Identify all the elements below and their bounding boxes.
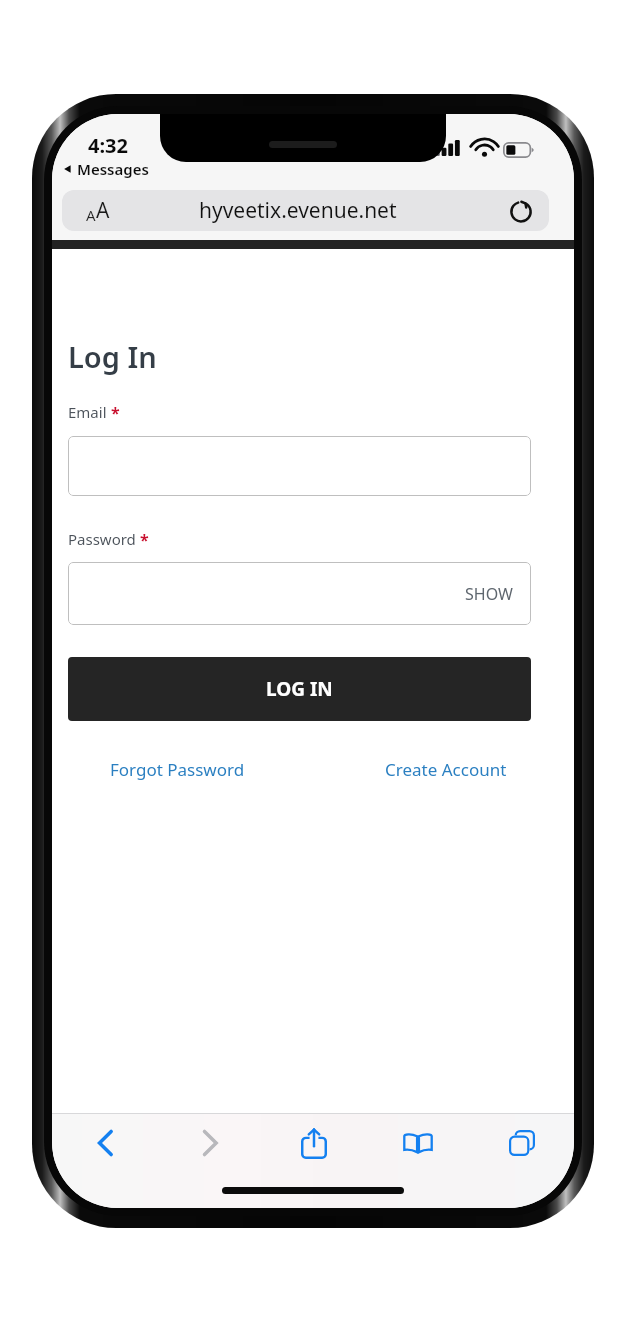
staticText: Forgot Password <box>110 758 245 781</box>
button[interactable]: A <box>62 190 549 231</box>
button[interactable]: Share <box>262 1114 366 1172</box>
staticText: hyveetix.evenue.net <box>199 196 397 225</box>
staticText: Email <box>68 402 111 422</box>
staticText: A <box>96 196 110 225</box>
staticText: LOG IN <box>266 676 333 702</box>
button[interactable]: Back <box>52 1114 157 1172</box>
staticText: Password <box>68 529 140 549</box>
staticText: Log In <box>68 337 157 376</box>
button[interactable]: Tabs <box>470 1114 574 1172</box>
button[interactable] <box>68 436 531 496</box>
button[interactable]: Create Account <box>381 754 511 785</box>
staticText: Create Account <box>385 758 507 781</box>
staticText: 4:32 <box>88 132 128 159</box>
button[interactable]: Forgot Password <box>106 754 249 785</box>
staticText: SHOW <box>465 583 513 605</box>
staticText: Messages <box>77 159 149 179</box>
button[interactable]: LOG IN <box>68 657 531 721</box>
staticText: * <box>140 529 149 551</box>
button[interactable]: SHOW <box>447 569 531 619</box>
staticText: * <box>111 402 120 424</box>
button[interactable]: Bookmarks <box>366 1114 470 1172</box>
button[interactable]: Forward <box>157 1114 262 1172</box>
other: Reload <box>493 198 549 224</box>
staticText: A <box>86 205 96 225</box>
